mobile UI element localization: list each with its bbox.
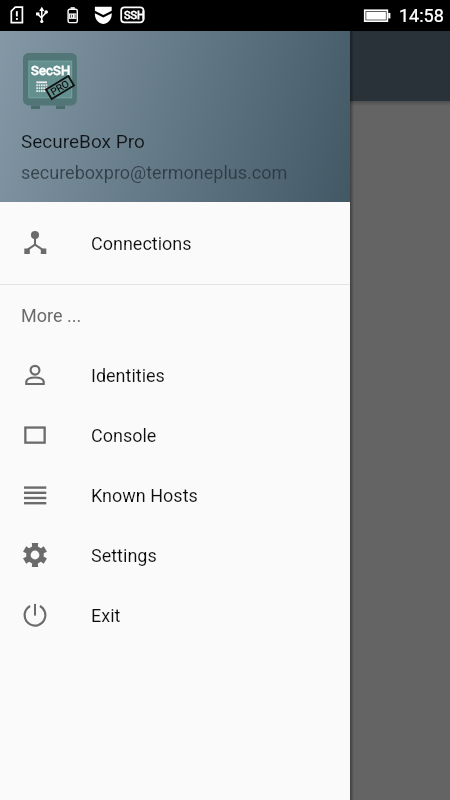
staticText: secureboxpro@termoneplus.com (21, 162, 288, 183)
staticText: 14:58 (399, 5, 444, 26)
staticText: SecSH (31, 63, 71, 78)
staticText: PRO (49, 78, 71, 97)
staticText: Identities (91, 365, 165, 386)
button[interactable]: Identities (0, 345, 350, 405)
button[interactable]: Console (0, 405, 350, 465)
button[interactable]: Settings (0, 525, 350, 585)
staticText: Console (91, 425, 157, 446)
staticText: Exit (91, 605, 121, 626)
button[interactable]: Exit (0, 585, 350, 645)
staticText: SecureBox Pro (21, 130, 145, 152)
button[interactable]: Connections (0, 202, 350, 284)
staticText: Known Hosts (91, 485, 198, 506)
staticText: Settings (91, 545, 157, 566)
button[interactable]: Known Hosts (0, 465, 350, 525)
staticText: SSH (124, 9, 145, 22)
staticText: More ... (21, 305, 82, 326)
staticText: Connections (91, 233, 192, 254)
